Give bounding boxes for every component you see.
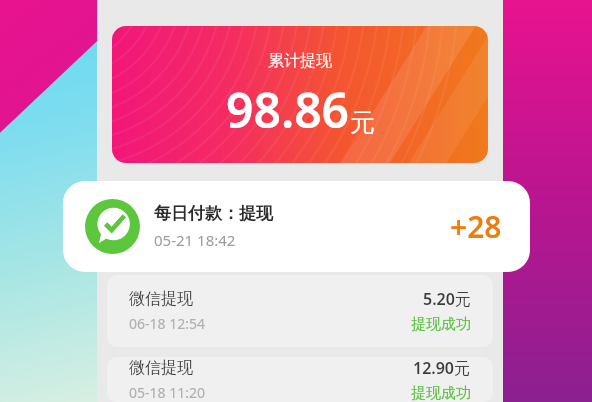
staticText: 5.20元 <box>423 288 471 310</box>
staticText: 05-21 18:42 <box>154 230 236 250</box>
button[interactable]: 微信提现 <box>107 275 493 347</box>
staticText: 提现成功 <box>411 384 471 402</box>
staticText: 12.90元 <box>413 357 471 379</box>
staticText: 元 <box>350 107 375 138</box>
staticText: 提现成功 <box>411 315 471 334</box>
staticText: 微信提现 <box>129 289 193 309</box>
staticText: 累计提现 <box>268 51 332 71</box>
staticText: 98.86 <box>226 77 350 142</box>
staticText: 05-18 11:20 <box>129 383 205 402</box>
other: WeChat payment <box>85 199 140 254</box>
button[interactable]: WeChat payment <box>63 181 530 272</box>
staticText: 每日付款：提现 <box>154 203 273 224</box>
staticText: 微信提现 <box>129 358 193 378</box>
staticText: +28 <box>450 206 502 247</box>
button[interactable]: 累计提现 <box>112 26 488 163</box>
staticText: 06-18 12:54 <box>129 314 205 333</box>
button[interactable]: 微信提现 <box>107 357 493 402</box>
